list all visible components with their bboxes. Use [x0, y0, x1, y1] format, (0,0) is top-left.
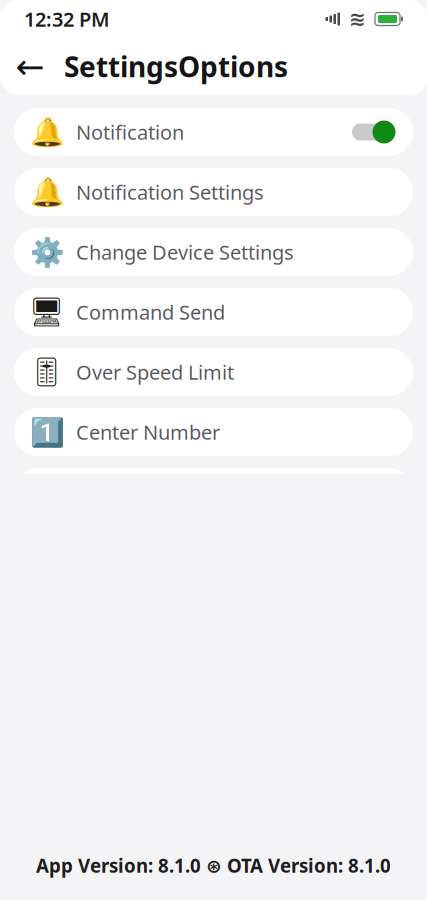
staticText: SettingsOptions	[64, 48, 288, 85]
staticText: ≋	[349, 8, 366, 30]
button[interactable]: 🔔	[14, 168, 413, 216]
staticText: ←	[15, 47, 44, 86]
staticText: ⚙️	[29, 236, 64, 268]
staticText: App Version: 8.1.0 ⊛ OTA Version: 8.1.0	[36, 853, 391, 878]
staticText: Command Send	[76, 299, 225, 325]
staticText: 🖥	[29, 296, 65, 328]
staticText: 🔔	[29, 116, 64, 148]
button[interactable]: 🎚	[14, 348, 413, 396]
button[interactable]: ⚙️	[14, 228, 413, 276]
button[interactable]: Back	[8, 44, 52, 88]
button[interactable]: 🆘	[14, 468, 413, 516]
staticText: 🔔	[29, 176, 64, 208]
button[interactable]: 1️⃣	[14, 408, 413, 456]
staticText: Notification	[76, 119, 184, 145]
staticText: Notification Settings	[76, 179, 264, 205]
staticText: Change Device Settings	[76, 239, 294, 265]
button[interactable]: 🖥	[14, 288, 413, 336]
staticText: 12:32 PM	[24, 6, 110, 32]
staticText: 1️⃣	[29, 416, 64, 448]
staticText: 🎚	[29, 356, 65, 388]
staticText: Over Speed Limit	[76, 359, 234, 385]
staticText: Center Number	[76, 419, 220, 445]
button[interactable]: 🔔	[14, 108, 413, 156]
